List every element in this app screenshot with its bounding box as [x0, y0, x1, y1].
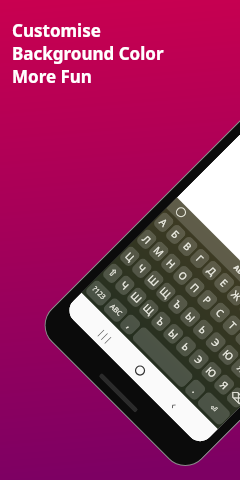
button[interactable]: З — [238, 296, 240, 320]
staticText: ⏎ — [208, 403, 219, 414]
button[interactable]: С — [208, 301, 232, 325]
button[interactable]: Ю — [216, 343, 240, 367]
button[interactable]: М — [147, 240, 170, 263]
button[interactable]: О — [171, 264, 194, 287]
button[interactable]: У — [233, 326, 240, 350]
button[interactable]: Back — [163, 393, 186, 416]
staticText: Ч — [117, 278, 132, 293]
button[interactable]: Е — [212, 271, 236, 295]
staticText: Ш — [145, 272, 163, 289]
staticText: П — [187, 280, 203, 296]
button[interactable]: Ъ — [149, 310, 172, 333]
button[interactable]: Г — [188, 247, 211, 270]
button[interactable]: , — [118, 313, 142, 337]
staticText: Я — [217, 378, 232, 392]
staticText: Ь — [196, 322, 211, 337]
staticText: Е — [217, 276, 231, 290]
button[interactable]: Э — [204, 330, 228, 354]
button[interactable]: Ц — [118, 245, 141, 268]
staticText: Ч — [134, 261, 149, 276]
button[interactable]: Л — [135, 228, 158, 251]
button[interactable]: Ч — [113, 274, 136, 297]
staticText: Ю — [203, 363, 220, 380]
button[interactable]: Я — [212, 373, 236, 397]
button[interactable]: ABC — [102, 296, 129, 324]
staticText: ABZ — [231, 263, 240, 280]
button[interactable]: Д — [200, 259, 223, 282]
staticText: Ю — [220, 347, 237, 364]
button[interactable]: Ш — [142, 269, 165, 292]
staticText: Г — [193, 252, 207, 266]
button[interactable]: Emoji — [169, 200, 192, 223]
staticText: Д — [204, 263, 220, 279]
button[interactable]: Ь — [191, 318, 215, 342]
staticText: ⌫ — [228, 388, 240, 407]
button[interactable]: ⇧ — [101, 262, 124, 285]
button[interactable]: Ы — [161, 322, 185, 346]
staticText: Ш — [128, 289, 146, 306]
staticText: Н — [163, 256, 179, 272]
button[interactable]: П — [183, 276, 206, 299]
button[interactable]: Щ — [137, 298, 160, 321]
staticText: У — [238, 331, 240, 346]
staticText: В — [180, 239, 195, 254]
staticText: Ы — [182, 309, 199, 325]
staticText: Ъ — [170, 297, 185, 312]
button[interactable]: Н — [159, 252, 182, 275]
staticText: More Fun — [12, 65, 92, 88]
button[interactable]: Р — [195, 288, 219, 312]
button[interactable]: Recents — [94, 324, 117, 346]
staticText: Ь — [179, 339, 194, 354]
button[interactable]: . — [183, 378, 207, 402]
button[interactable]: ABZ — [226, 257, 240, 286]
button[interactable]: Я — [229, 356, 240, 380]
staticText: ‹ — [168, 397, 182, 412]
button[interactable] — [131, 325, 194, 389]
staticText: Р — [200, 293, 215, 308]
button[interactable]: ⌫ — [225, 385, 240, 409]
staticText: Э — [192, 352, 206, 367]
staticText: Э — [209, 335, 223, 350]
staticText: М — [151, 243, 168, 260]
button[interactable]: А — [152, 211, 175, 234]
button[interactable]: Ч — [130, 257, 153, 280]
staticText: . — [189, 384, 201, 396]
staticText: ?123 — [90, 284, 108, 303]
button[interactable]: ?123 — [84, 279, 113, 308]
button[interactable]: Щ — [154, 281, 177, 304]
staticText: Customise — [12, 19, 101, 42]
staticText: ABC — [107, 302, 124, 319]
staticText: ||| — [96, 326, 115, 345]
button[interactable]: Ъ — [166, 293, 189, 316]
staticText: Я — [234, 361, 240, 375]
button[interactable]: Ь — [174, 334, 198, 358]
staticText: , — [124, 319, 136, 331]
button[interactable]: Ш — [125, 286, 148, 309]
staticText: А — [156, 215, 171, 230]
button[interactable]: Э — [187, 347, 211, 371]
staticText: Б — [168, 227, 183, 242]
button[interactable]: ⏎ — [196, 390, 232, 426]
button[interactable]: Ы — [178, 305, 202, 329]
button[interactable]: Б — [164, 223, 187, 246]
button[interactable]: Home — [129, 359, 151, 381]
staticText: ⇧ — [105, 266, 120, 281]
staticText: Ы — [165, 326, 182, 342]
button[interactable]: Ж — [225, 284, 240, 308]
button[interactable]: В — [176, 235, 199, 258]
staticText: Ц — [122, 249, 138, 265]
staticText: Щ — [140, 301, 158, 318]
staticText: С — [213, 305, 228, 320]
staticText: О — [175, 268, 191, 284]
staticText: Ъ — [153, 314, 168, 329]
staticText: Л — [139, 232, 154, 247]
staticText: Ж — [228, 287, 240, 304]
button[interactable]: Ю — [199, 360, 223, 384]
staticText: Background Color — [12, 42, 164, 65]
button[interactable]: Т — [221, 313, 240, 337]
staticText: Щ — [157, 284, 175, 301]
staticText: Т — [226, 318, 240, 332]
